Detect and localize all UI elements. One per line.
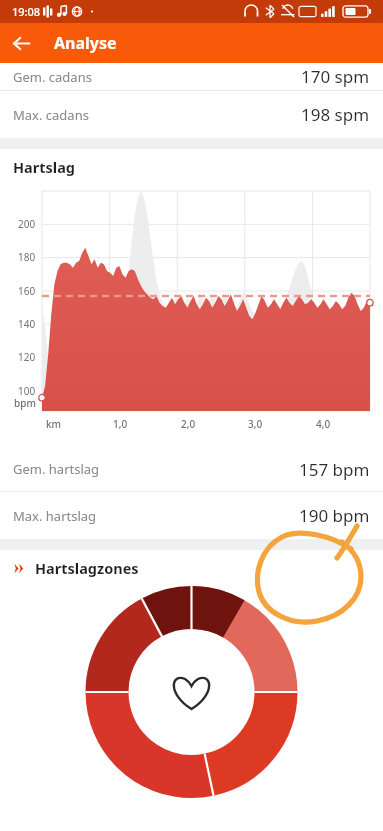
staticText: Hartslagzones	[35, 558, 139, 578]
button[interactable]: Hartslagzones	[0, 550, 383, 586]
staticText: 3,0	[248, 417, 263, 431]
staticText: 2,0	[181, 417, 196, 431]
button[interactable]: Heart rate zones	[0, 586, 383, 831]
staticText: bpm	[14, 396, 36, 410]
staticText: Max. hartslag	[13, 507, 97, 525]
button[interactable]: Max. hartslag	[0, 492, 383, 539]
staticText: Gem. hartslag	[13, 460, 100, 478]
button[interactable]: Back	[0, 23, 42, 63]
staticText: 200	[18, 217, 36, 231]
staticText: km	[46, 417, 62, 431]
staticText: 19:08	[12, 4, 41, 19]
staticText: Analyse	[54, 32, 117, 54]
staticText: 160	[18, 284, 36, 298]
button[interactable]: Gem. hartslag	[0, 447, 383, 491]
staticText: 100	[18, 384, 36, 398]
staticText: 157 bpm	[299, 458, 370, 481]
staticText: Gem. cadans	[13, 68, 92, 86]
staticText: 4,0	[316, 417, 331, 431]
staticText: 140	[18, 317, 36, 331]
other: Heart rate chart	[0, 185, 383, 447]
staticText: 198 spm	[301, 103, 370, 126]
staticText: Max. cadans	[13, 106, 89, 124]
staticText: 170 spm	[301, 65, 370, 88]
staticText: 1,0	[113, 417, 128, 431]
staticText: 120	[18, 350, 36, 364]
staticText: 180	[18, 250, 36, 264]
button[interactable]: Max. cadans	[0, 91, 383, 138]
staticText: Hartslag	[13, 157, 76, 177]
staticText: 190 bpm	[299, 504, 370, 527]
button[interactable]: Gem. cadans	[0, 63, 383, 90]
